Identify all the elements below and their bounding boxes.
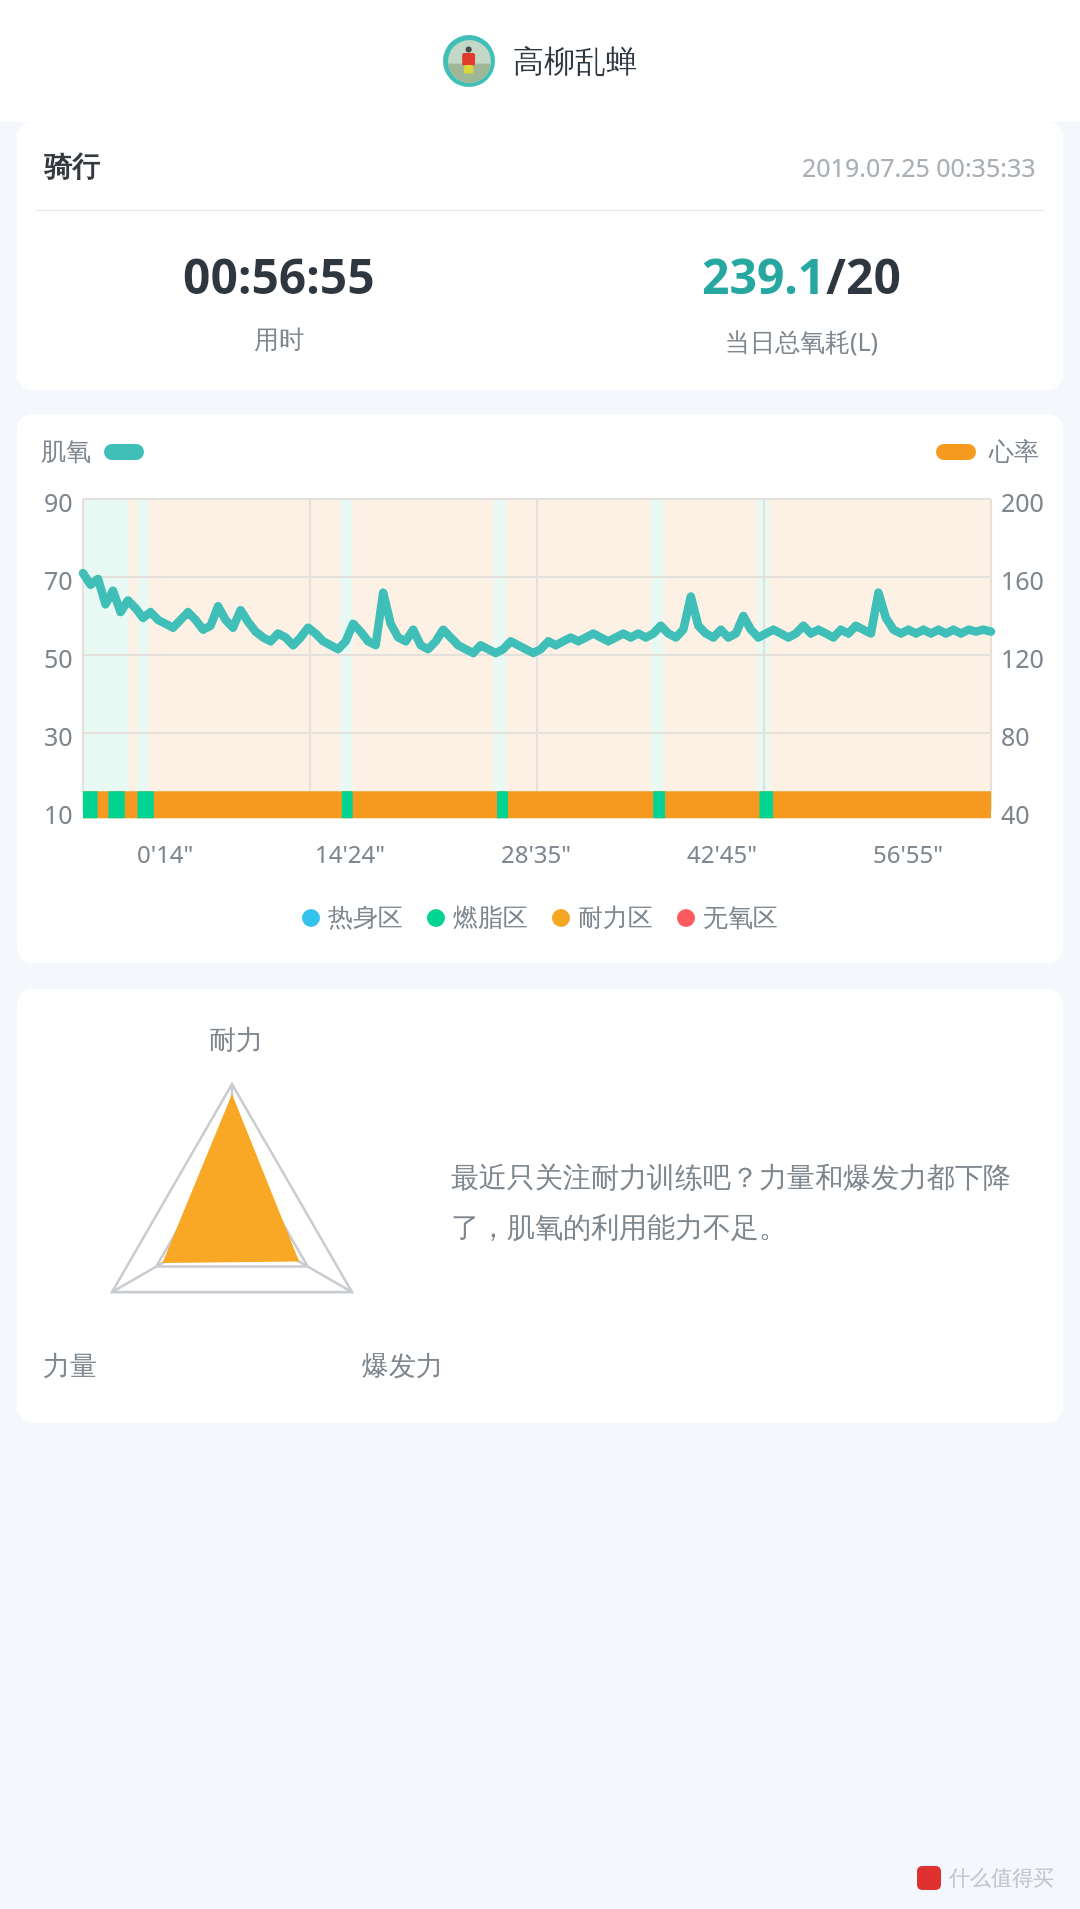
staticText: 70 [44, 563, 73, 591]
staticText: 90 [44, 485, 73, 513]
staticText: 无氧区 [703, 902, 778, 933]
staticText: 高柳乱蝉 [513, 42, 637, 81]
staticText: 骑行 [44, 149, 100, 184]
staticText: 50 [44, 641, 73, 669]
staticText: 42'45" [687, 837, 758, 870]
staticText: 2019.07.25 00:35:33 [802, 150, 1036, 184]
button[interactable]: 耐力 [17, 989, 1063, 1423]
staticText: 30 [44, 719, 73, 747]
button[interactable]: 肌氧 [17, 414, 1063, 963]
staticText: 14'24" [315, 837, 386, 870]
staticText: 什么值得买 [949, 1865, 1054, 1891]
other: Logo [917, 1866, 941, 1890]
staticText: 肌氧 [41, 436, 91, 467]
staticText: 力量 [43, 1349, 97, 1383]
button[interactable]: 无氧区 [677, 902, 778, 933]
staticText: 最近只关注耐力训练吧？力量和爆发力都下降了，肌氧的利用能力不足。 [451, 1160, 1033, 1246]
staticText: 239.1 [702, 243, 826, 308]
staticText: 160 [1001, 563, 1044, 591]
staticText: 200 [1001, 485, 1044, 513]
staticText: 燃脂区 [453, 902, 528, 933]
staticText: 爆发力 [362, 1349, 443, 1383]
staticText: 00:56:55 [183, 243, 375, 308]
button[interactable]: 热身区 [302, 902, 403, 933]
staticText: 56'55" [873, 837, 944, 870]
staticText: 热身区 [328, 902, 403, 933]
staticText: 120 [1001, 641, 1044, 669]
staticText: 0'14" [137, 837, 194, 870]
staticText: 耐力区 [578, 902, 653, 933]
button[interactable]: 耐力区 [552, 902, 653, 933]
staticText: /20 [826, 243, 901, 308]
staticText: 当日总氧耗(L) [725, 324, 879, 358]
button[interactable]: 高柳乱蝉 [431, 27, 649, 95]
staticText: 80 [1001, 719, 1030, 747]
staticText: 40 [1001, 797, 1030, 825]
button[interactable]: 燃脂区 [427, 902, 528, 933]
staticText: 28'35" [501, 837, 572, 870]
button[interactable]: 骑行 [17, 122, 1063, 390]
staticText: 用时 [254, 324, 304, 355]
staticText: 耐力 [209, 1023, 263, 1057]
staticText: 心率 [989, 436, 1039, 467]
staticText: 10 [44, 797, 73, 825]
